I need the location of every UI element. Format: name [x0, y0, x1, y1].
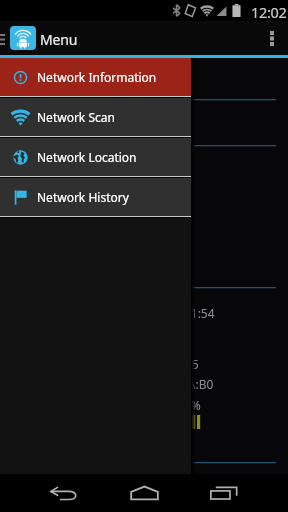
button[interactable]: Back [24, 474, 104, 512]
staticText: Uptime: 51:54 [136, 305, 215, 321]
staticText: Network Scan [37, 109, 115, 125]
button[interactable]: Network Scan [0, 98, 191, 136]
staticText: 44 % [174, 397, 201, 413]
staticText: 12:02 [251, 2, 287, 22]
button[interactable]: More options [256, 21, 288, 55]
button[interactable]: Network History [0, 178, 191, 216]
staticText: Menu [40, 30, 78, 49]
staticText: 65 [185, 356, 199, 372]
button[interactable]: Home [104, 474, 184, 512]
button[interactable]: Recents [184, 474, 264, 512]
button[interactable]: Network Location [0, 138, 191, 176]
staticText: Network Information [37, 69, 157, 85]
staticText: Network History [37, 189, 129, 205]
staticText: 9A:B0 [181, 376, 214, 392]
staticText: Network Location [37, 149, 137, 165]
button[interactable]: Network Information [0, 58, 191, 96]
